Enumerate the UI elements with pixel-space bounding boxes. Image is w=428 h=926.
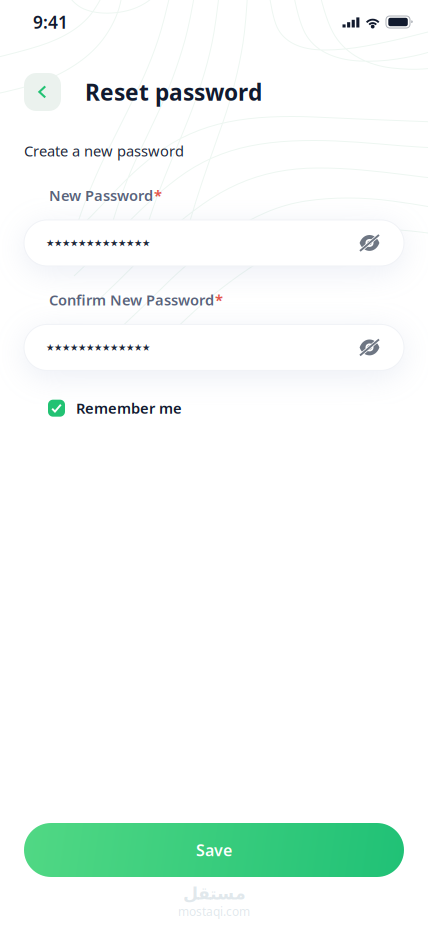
staticText: New Password — [49, 185, 153, 205]
staticText: Create a new password — [24, 141, 184, 160]
staticText: Reset password — [85, 77, 262, 107]
staticText: ★★★★★★★★★★★★★ — [46, 238, 150, 248]
staticText: * — [215, 290, 223, 309]
button[interactable]: Show password — [353, 224, 386, 262]
button[interactable]: Remember me — [0, 388, 428, 428]
staticText: ★★★★★★★★★★★★★ — [46, 342, 150, 353]
staticText: Confirm New Password — [49, 290, 214, 309]
staticText: Save — [196, 839, 232, 861]
button[interactable]: Save — [24, 823, 404, 877]
button[interactable]: Show password — [353, 328, 386, 366]
staticText: mostaqi.com — [178, 903, 250, 919]
staticText: Remember me — [76, 398, 182, 418]
staticText: 9:41 — [33, 10, 68, 33]
button[interactable]: Back — [24, 73, 61, 111]
staticText: مستقل — [182, 884, 245, 903]
staticText: * — [154, 185, 162, 205]
